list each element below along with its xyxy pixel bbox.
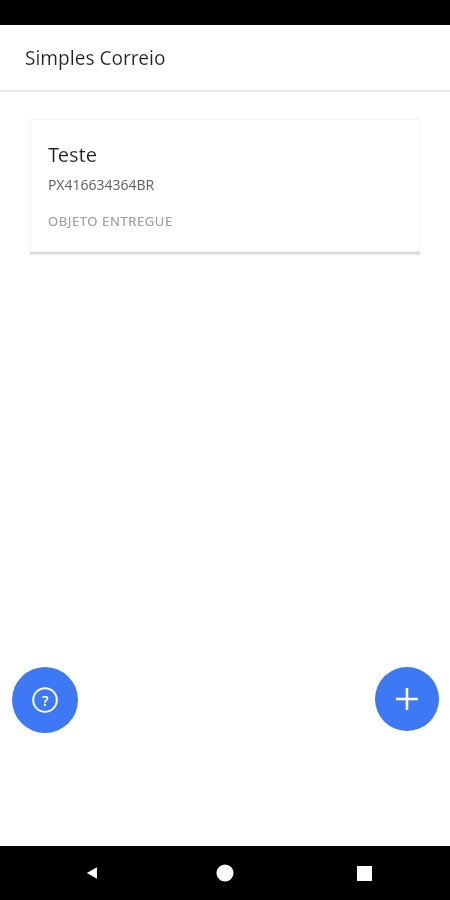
staticText: Teste: [48, 141, 98, 168]
staticText: PX416634364BR: [48, 175, 155, 194]
staticText: ?: [42, 691, 49, 710]
button[interactable]: Teste: [30, 119, 420, 252]
staticText: OBJETO ENTREGUE: [48, 212, 173, 230]
button[interactable]: Add: [375, 667, 439, 731]
button[interactable]: Help: [12, 667, 78, 733]
button[interactable]: Back: [68, 848, 118, 898]
button[interactable]: Recent apps: [339, 848, 389, 898]
button[interactable]: Home: [200, 848, 250, 898]
staticText: Simples Correio: [25, 45, 166, 71]
